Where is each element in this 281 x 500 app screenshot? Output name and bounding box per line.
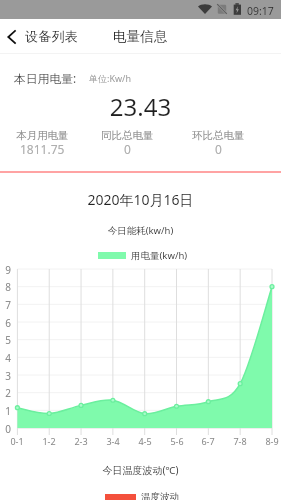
- staticText: 0-1: [4, 435, 30, 447]
- staticText: 1811.75: [20, 141, 65, 157]
- staticText: 4-5: [132, 435, 158, 447]
- staticText: 8: [0, 280, 11, 294]
- other: 返回: [7, 30, 16, 44]
- staticText: 本日用电量:: [14, 70, 77, 86]
- button[interactable]: 环比总电量: [173, 129, 263, 158]
- staticText: 用电量(kw/h): [131, 249, 188, 262]
- staticText: 7-8: [227, 435, 253, 447]
- staticText: 9: [0, 263, 11, 277]
- staticText: 2020年10月16日: [0, 190, 281, 209]
- staticText: 环比总电量: [192, 129, 245, 142]
- button[interactable]: 用电量(kw/h): [98, 249, 188, 262]
- staticText: 5-6: [164, 435, 190, 447]
- staticText: 2-3: [68, 435, 94, 447]
- staticText: 温度波动: [141, 491, 179, 500]
- button[interactable]: 本月用电量: [0, 129, 87, 158]
- staticText: 同比总电量: [101, 129, 154, 142]
- staticText: 4: [0, 351, 11, 365]
- staticText: 0: [0, 422, 11, 436]
- staticText: 0: [124, 141, 131, 157]
- staticText: 设备列表: [25, 28, 78, 45]
- staticText: 3: [0, 369, 11, 383]
- staticText: 今日能耗(kw/h): [0, 224, 281, 237]
- staticText: 电量信息: [113, 28, 168, 45]
- staticText: 6-7: [195, 435, 221, 447]
- staticText: 7: [0, 298, 11, 312]
- staticText: 1-2: [36, 435, 62, 447]
- staticText: 2: [0, 386, 11, 400]
- staticText: 09:17: [247, 4, 274, 18]
- staticText: 5: [0, 333, 11, 347]
- staticText: 0: [215, 141, 222, 157]
- staticText: 8-9: [259, 435, 281, 447]
- staticText: 单位:Kw/h: [89, 72, 131, 84]
- staticText: 今日温度波动(℃): [0, 463, 281, 477]
- staticText: 1: [0, 404, 11, 418]
- staticText: 本月用电量: [16, 129, 69, 142]
- button[interactable]: 返回: [0, 22, 85, 51]
- staticText: 6: [0, 316, 11, 330]
- button[interactable]: 温度波动: [105, 491, 179, 500]
- staticText: 3-4: [100, 435, 126, 447]
- staticText: 23.43: [0, 90, 281, 123]
- button[interactable]: 同比总电量: [82, 129, 172, 158]
